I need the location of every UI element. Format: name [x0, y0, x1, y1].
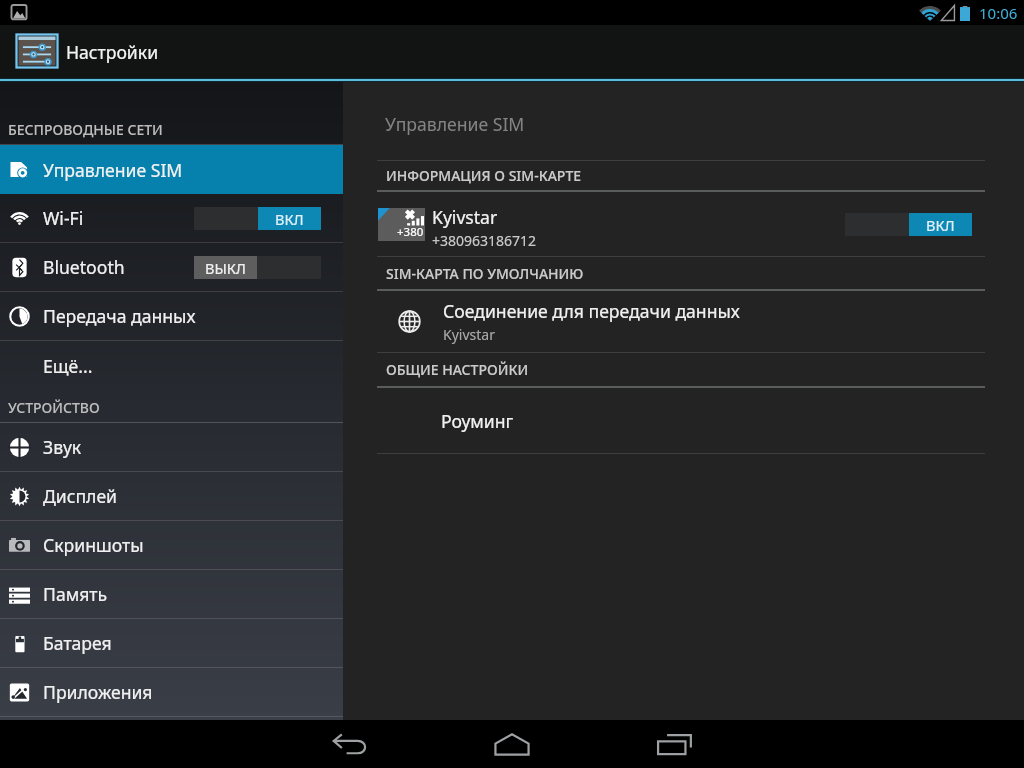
button[interactable]: Home — [452, 720, 572, 768]
staticText: Kyivstar — [432, 205, 498, 229]
staticText: Управление SIM — [43, 158, 183, 182]
button[interactable]: SIM enabled toggle — [845, 213, 972, 236]
staticText: Ещё... — [43, 354, 93, 378]
staticText: ВКЛ — [275, 209, 304, 229]
button[interactable]: Bluetooth — [0, 243, 343, 291]
staticText: Батарея — [43, 631, 112, 655]
button[interactable]: Back — [290, 720, 410, 768]
staticText: УСТРОЙСТВО — [8, 398, 100, 417]
button[interactable]: Приложения — [0, 668, 343, 716]
button[interactable]: Дисплей — [0, 472, 343, 520]
button[interactable]: Settings app icon — [15, 30, 59, 74]
staticText: Приложения — [43, 680, 153, 704]
staticText: Память — [43, 582, 108, 606]
button[interactable]: Toggle off — [194, 256, 321, 279]
button[interactable]: Роуминг — [343, 388, 1024, 453]
button[interactable]: Передача данных — [0, 292, 343, 340]
button[interactable]: Recent apps — [615, 720, 735, 768]
staticText: Дисплей — [43, 484, 118, 508]
staticText: Kyivstar — [443, 325, 495, 344]
button[interactable]: Ещё... — [0, 341, 343, 390]
staticText: Bluetooth — [43, 255, 125, 279]
staticText: БЕСПРОВОДНЫЕ СЕТИ — [8, 120, 163, 139]
button[interactable]: Соединение для передачи данных — [343, 291, 1024, 352]
staticText: SIM-КАРТА ПО УМОЛЧАНИЮ — [386, 264, 584, 283]
staticText: ОБЩИЕ НАСТРОЙКИ — [386, 360, 529, 379]
staticText: ВЫКЛ — [205, 258, 246, 278]
button[interactable]: Батарея — [0, 619, 343, 667]
staticText: Настройки — [66, 40, 159, 64]
staticText: +380 — [397, 224, 424, 240]
staticText: Передача данных — [43, 304, 196, 328]
staticText: Звук — [43, 435, 82, 459]
staticText: Управление SIM — [385, 112, 525, 136]
button[interactable]: Управление SIM — [0, 145, 343, 194]
button[interactable]: Звук — [0, 423, 343, 471]
button[interactable]: Скриншоты — [0, 521, 343, 569]
staticText: Скриншоты — [43, 533, 144, 557]
button[interactable]: Toggle on — [194, 207, 321, 230]
button[interactable]: +380 — [343, 192, 1024, 256]
button[interactable]: Wi-Fi — [0, 194, 343, 242]
staticText: Роуминг — [441, 409, 514, 433]
button[interactable]: Память — [0, 570, 343, 618]
staticText: ИНФОРМАЦИЯ О SIM-КАРТЕ — [386, 166, 582, 185]
staticText: ВКЛ — [926, 215, 955, 235]
staticText: +380963186712 — [432, 231, 537, 250]
staticText: Соединение для передачи данных — [443, 299, 740, 323]
staticText: 10:06 — [979, 3, 1018, 23]
staticText: Wi-Fi — [43, 206, 84, 230]
